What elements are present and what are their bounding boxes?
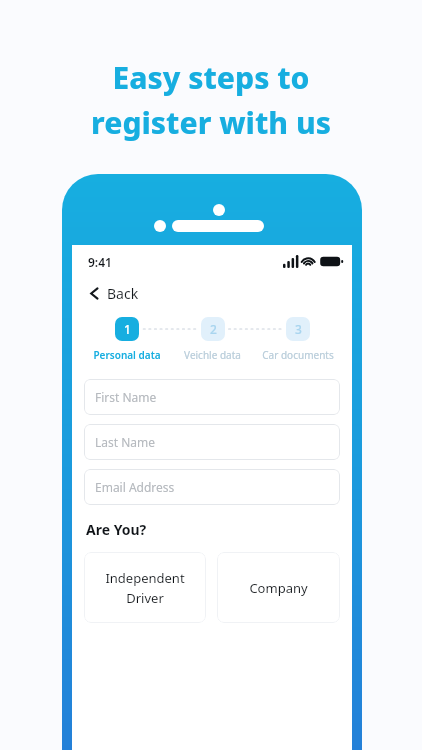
button[interactable]: 3: [255, 317, 340, 362]
other: Back: [87, 286, 102, 301]
staticText: Easy steps to: [112, 57, 310, 98]
staticText: Personal data: [93, 348, 161, 362]
staticText: Independent Driver: [105, 569, 185, 607]
staticText: Company: [249, 579, 308, 597]
button[interactable]: Company: [217, 552, 340, 623]
staticText: First Name: [95, 389, 157, 405]
button[interactable]: Last Name: [84, 424, 340, 460]
staticText: 9:41: [88, 254, 112, 270]
staticText: 3: [295, 321, 302, 337]
staticText: Veichle data: [184, 348, 241, 362]
button[interactable]: Email Address: [84, 469, 340, 505]
staticText: register with us: [91, 102, 331, 143]
staticText: Car documents: [262, 348, 334, 362]
button[interactable]: Independent Driver: [84, 552, 206, 623]
staticText: Last Name: [95, 434, 156, 450]
staticText: 1: [124, 321, 131, 337]
staticText: 2: [210, 321, 217, 337]
button[interactable]: First Name: [84, 379, 340, 415]
staticText: Email Address: [95, 479, 175, 495]
button[interactable]: Back: [83, 278, 143, 308]
button[interactable]: 1: [84, 317, 170, 362]
staticText: Are You?: [86, 520, 147, 539]
staticText: Back: [107, 284, 139, 303]
button[interactable]: 2: [170, 317, 255, 362]
